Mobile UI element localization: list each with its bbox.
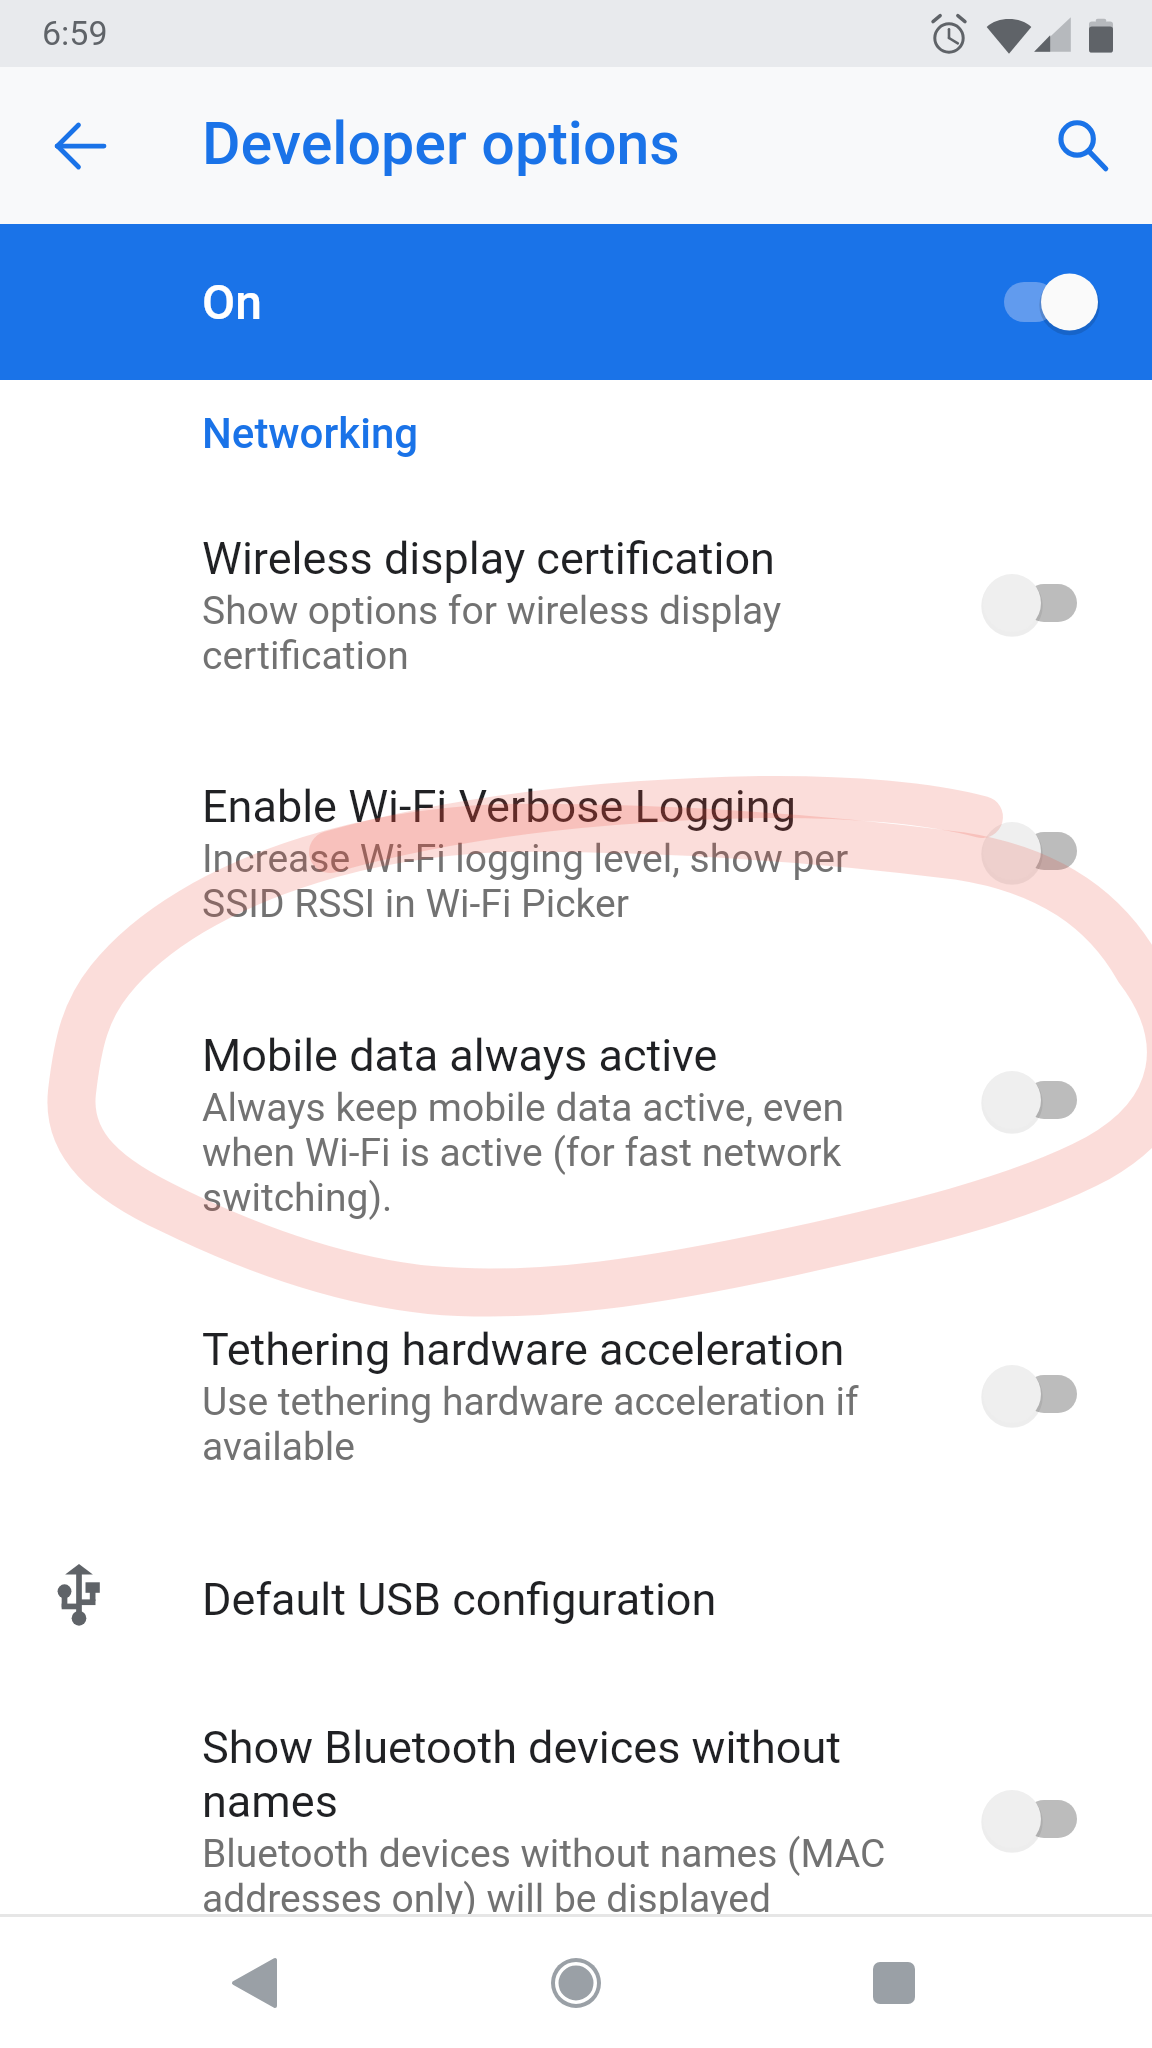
staticText: Bluetooth devices without names (MAC add… — [202, 1831, 886, 1921]
staticText: On — [202, 274, 262, 330]
staticText: Use tethering hardware acceleration if a… — [202, 1379, 859, 1469]
staticText: Show Bluetooth devices without names — [202, 1720, 892, 1828]
staticText: Networking — [202, 409, 419, 458]
staticText: Increase Wi-Fi logging level, show per S… — [202, 836, 849, 926]
button[interactable]: Default USB configuration — [0, 1469, 1152, 1629]
staticText: Wireless display certification — [202, 531, 775, 585]
button[interactable]: Enable Wi-Fi Verbose Logging — [0, 678, 1152, 926]
staticText: Enable Wi-Fi Verbose Logging — [202, 779, 796, 833]
staticText: Default USB configuration — [202, 1573, 717, 1626]
staticText: Developer options — [202, 109, 680, 178]
staticText: 6:59 — [42, 13, 108, 53]
button[interactable]: Tethering hardware acceleration — [0, 1220, 1152, 1469]
button[interactable]: On — [0, 224, 1152, 380]
staticText: Show options for wireless display certif… — [202, 588, 782, 678]
button[interactable]: Recent apps — [830, 1919, 958, 2047]
button[interactable]: Show Bluetooth devices without names — [0, 1629, 1152, 1921]
staticText: Always keep mobile data active, even whe… — [202, 1085, 845, 1220]
button[interactable]: Wireless display certification — [0, 458, 1152, 678]
button[interactable]: Mobile data always active — [0, 926, 1152, 1220]
staticText: Mobile data always active — [202, 1028, 718, 1082]
button[interactable]: Search — [1034, 98, 1130, 194]
button[interactable]: Back — [32, 98, 128, 194]
staticText: Tethering hardware acceleration — [202, 1322, 845, 1376]
button[interactable]: Home — [512, 1919, 640, 2047]
button[interactable]: Back — [190, 1919, 318, 2047]
